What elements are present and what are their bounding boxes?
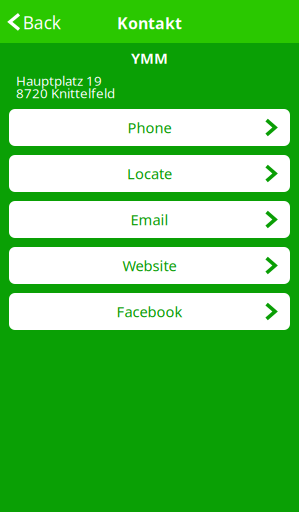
staticText: Facebook: [116, 302, 182, 321]
staticText: YMM: [131, 48, 168, 68]
button[interactable]: Back: [0, 0, 61, 43]
staticText: Hauptplatz 19: [16, 72, 102, 89]
staticText: 8720 Knittelfeld: [16, 84, 115, 102]
staticText: Website: [122, 256, 176, 275]
staticText: Back: [23, 11, 61, 34]
button[interactable]: Facebook: [9, 293, 290, 330]
button[interactable]: Email: [9, 201, 290, 238]
button[interactable]: Website: [9, 247, 290, 284]
button[interactable]: Locate: [9, 155, 290, 192]
staticText: Email: [130, 210, 168, 229]
staticText: Phone: [127, 118, 171, 137]
staticText: Locate: [127, 164, 172, 183]
button[interactable]: Phone: [9, 109, 290, 146]
staticText: Kontakt: [117, 12, 182, 34]
